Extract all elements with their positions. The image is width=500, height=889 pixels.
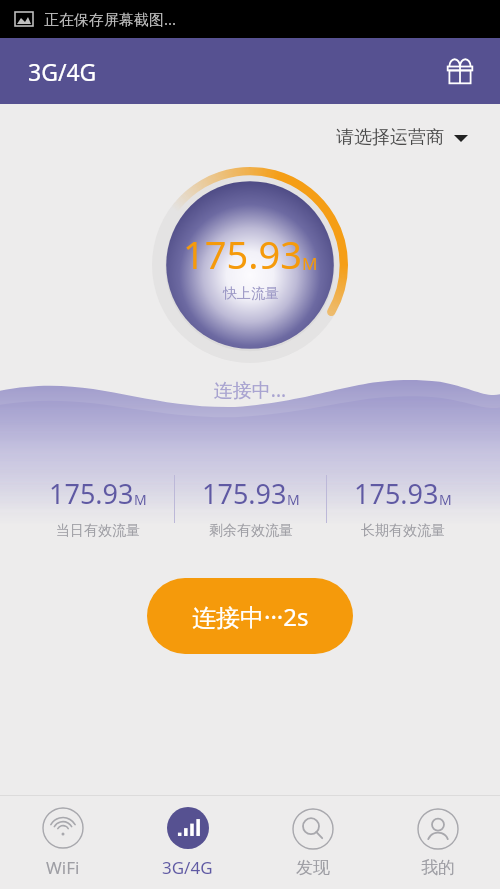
button[interactable]: 我的 [375,796,500,889]
staticText: 请选择运营商 [336,126,444,149]
staticText: M [134,490,147,509]
staticText: 正在保存屏幕截图... [44,9,177,29]
staticText: 3G/4G [28,56,97,87]
button[interactable]: WiFi [0,796,125,889]
staticText: 我的 [421,857,455,878]
staticText: 发现 [296,857,330,878]
staticText: 3G/4G [162,856,213,879]
staticText: 175.93 [354,475,439,512]
staticText: M [287,490,300,509]
button[interactable]: 连接中···2s [147,578,353,654]
staticText: 连接中... [0,377,500,403]
staticText: 快上流量 [223,285,279,303]
staticText: 175.93 [49,475,134,512]
staticText: 175.93 [202,475,287,512]
staticText: 当日有效流量 [56,522,140,540]
button[interactable]: 3G/4G [125,796,250,889]
staticText: 剩余有效流量 [209,522,293,540]
staticText: WiFi [46,856,80,879]
staticText: 长期有效流量 [361,522,445,540]
button[interactable]: 发现 [250,796,375,889]
staticText: M [302,252,318,275]
staticText: 连接中···2s [192,600,309,633]
button[interactable]: 请选择运营商 [330,120,474,155]
staticText: M [439,490,452,509]
button[interactable]: Gifts [438,49,482,93]
staticText: 175.93 [183,228,302,280]
